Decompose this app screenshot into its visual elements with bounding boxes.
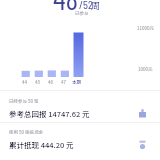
staticText: 1000元 — [138, 66, 153, 73]
other: Wallet — [135, 107, 151, 123]
staticText: 本期 — [72, 79, 81, 86]
staticText: 周 — [91, 0, 101, 12]
staticText: 参考总回报 14747.62 元 — [9, 108, 90, 119]
button[interactable]: 已经参与 50 笔 — [0, 93, 160, 124]
staticText: 45 — [35, 79, 40, 86]
staticText: 累计抵现 444.20 元 — [9, 139, 74, 150]
staticText: 44 — [22, 79, 27, 86]
other: Coupons — [135, 138, 151, 154]
staticText: 48 — [53, 0, 79, 16]
staticText: 11000元 — [137, 25, 154, 32]
staticText: 46 — [48, 79, 53, 86]
staticText: 使用 50 张抵现金 — [9, 129, 44, 136]
staticText: 47 — [61, 79, 66, 86]
staticText: 已经参与 50 笔 — [9, 98, 39, 105]
staticText: /52 — [79, 0, 93, 11]
button[interactable]: 使用 50 张抵现金 — [0, 124, 160, 155]
staticText: 已参与 — [75, 10, 89, 17]
